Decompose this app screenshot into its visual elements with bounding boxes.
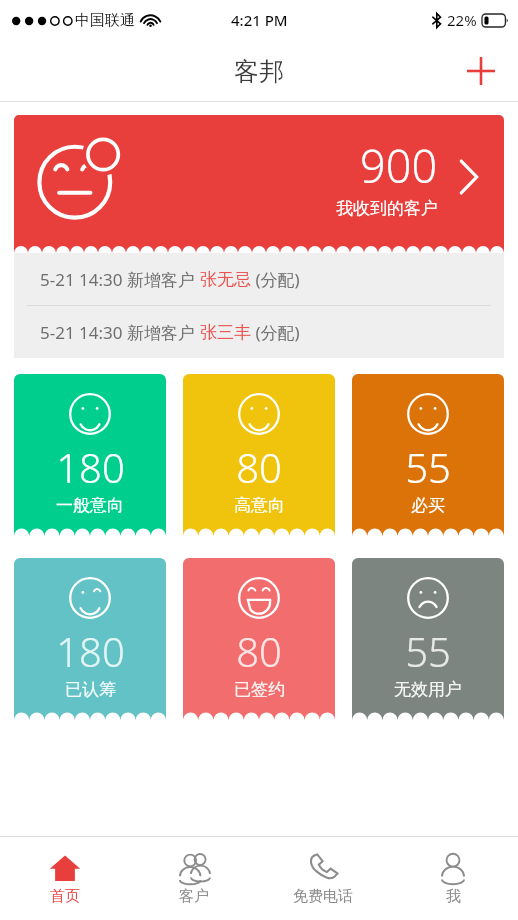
button[interactable]: 80 [183, 374, 335, 536]
staticText: 必买 [411, 495, 445, 516]
staticText: 55 [405, 624, 451, 678]
staticText: 22% [447, 10, 477, 30]
button[interactable]: 55 [352, 558, 504, 720]
staticText: 5-21 14:30 新增客户 [40, 321, 200, 344]
staticText: 张无忌 [200, 269, 251, 290]
staticText: 已认筹 [65, 679, 116, 700]
staticText: 首页 [50, 887, 80, 906]
staticText: 4:21 PM [231, 10, 288, 30]
button[interactable]: 我 [388, 837, 518, 920]
button[interactable]: 80 [183, 558, 335, 720]
button[interactable]: 首页 [0, 837, 129, 920]
button[interactable]: 180 [14, 374, 166, 536]
staticText: (分配) [251, 268, 300, 291]
staticText: 中国联通 [75, 11, 135, 30]
staticText: (分配) [251, 321, 300, 344]
button[interactable]: 5-21 14:30 新增客户 [14, 306, 504, 358]
staticText: 高意向 [234, 495, 285, 516]
staticText: 免费电话 [293, 887, 353, 906]
staticText: 900 [360, 135, 438, 196]
button[interactable]: 5-21 14:30 新增客户 [14, 253, 504, 305]
staticText: 180 [56, 624, 125, 678]
staticText: 客邦 [234, 56, 284, 87]
staticText: 5-21 14:30 新增客户 [40, 268, 200, 291]
staticText: 我收到的客户 [336, 198, 438, 219]
staticText: 我 [446, 887, 461, 906]
staticText: 80 [236, 440, 282, 494]
button[interactable]: 900 [14, 115, 504, 253]
button[interactable]: 55 [352, 374, 504, 536]
staticText: 80 [236, 624, 282, 678]
button[interactable]: 客户 [129, 837, 258, 920]
staticText: 55 [405, 440, 451, 494]
staticText: 已签约 [234, 679, 285, 700]
button[interactable]: 180 [14, 558, 166, 720]
staticText: 客户 [179, 887, 209, 906]
staticText: 张三丰 [200, 322, 251, 343]
button[interactable]: Add [458, 48, 504, 94]
button[interactable]: 免费电话 [258, 837, 388, 920]
staticText: 无效用户 [394, 679, 462, 700]
staticText: 180 [56, 440, 125, 494]
staticText: 一般意向 [56, 495, 124, 516]
